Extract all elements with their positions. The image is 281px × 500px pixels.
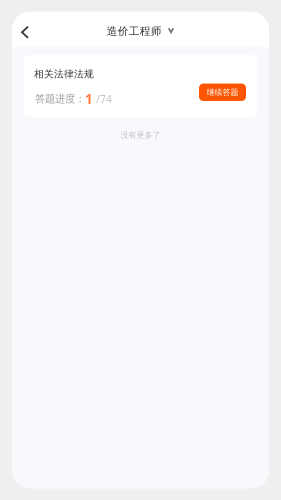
staticText: /74 (93, 92, 112, 106)
staticText: 没有更多了 (120, 130, 160, 140)
staticText: 相关法律法规 (34, 68, 94, 80)
staticText: 1 (85, 90, 93, 108)
staticText: 继续答题 (206, 87, 238, 97)
button[interactable]: 造价工程师 (107, 25, 174, 38)
staticText: 造价工程师 (107, 25, 162, 38)
staticText: 答题进度： (35, 92, 85, 105)
button[interactable]: 继续答题 (199, 83, 246, 101)
button[interactable]: Back (12, 15, 40, 47)
